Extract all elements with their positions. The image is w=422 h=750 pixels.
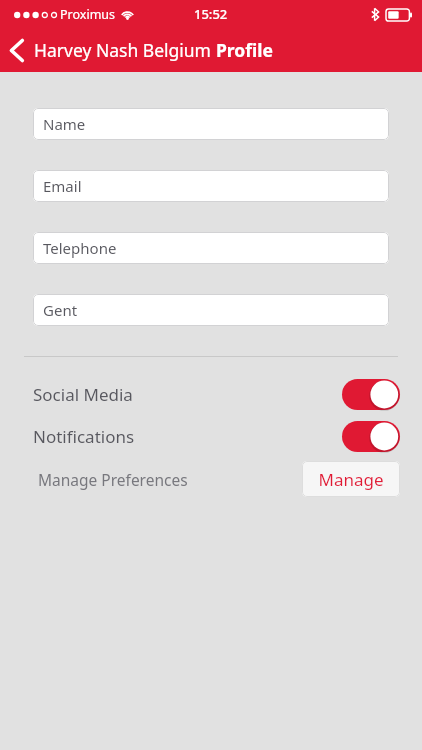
- staticText: Profile: [216, 38, 273, 62]
- button[interactable]: Email: [33, 170, 389, 202]
- staticText: Manage: [318, 468, 384, 491]
- button[interactable]: Notifications: [33, 415, 400, 457]
- staticText: Telephone: [43, 238, 117, 258]
- button[interactable]: Social Media: [33, 373, 400, 415]
- staticText: Proximus: [60, 6, 116, 23]
- button[interactable]: Name: [33, 108, 389, 140]
- button[interactable]: Gent: [33, 294, 389, 326]
- staticText: Notifications: [33, 425, 135, 448]
- staticText: Email: [43, 176, 82, 196]
- staticText: Gent: [43, 300, 78, 320]
- staticText: Harvey Nash Belgium: [34, 38, 216, 62]
- staticText: 15:52: [194, 5, 228, 23]
- button[interactable]: Manage: [302, 461, 400, 497]
- button[interactable]: Telephone: [33, 232, 389, 264]
- staticText: Manage Preferences: [38, 469, 188, 490]
- staticText: Social Media: [33, 383, 133, 406]
- staticText: Name: [43, 114, 86, 134]
- button[interactable]: Back: [0, 28, 34, 72]
